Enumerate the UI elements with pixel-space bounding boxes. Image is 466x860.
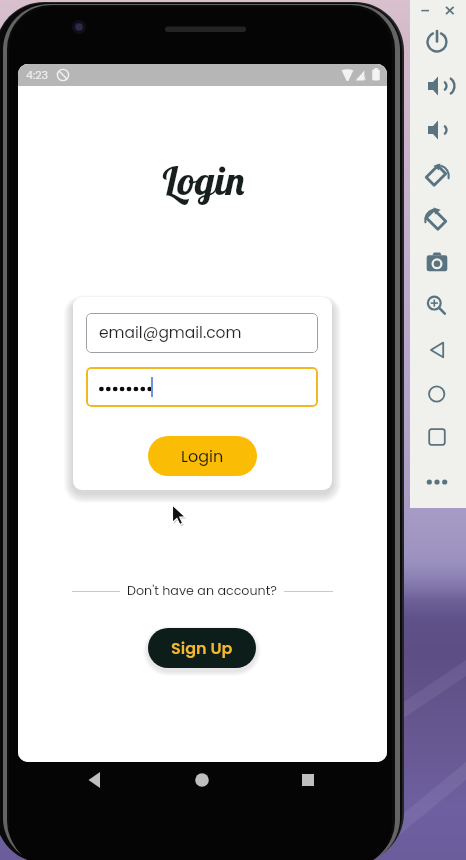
staticText: email@gmail.com — [99, 322, 242, 344]
button[interactable]: Minimize — [410, 0, 466, 30]
button[interactable]: Screenshot — [416, 243, 460, 283]
button[interactable]: Login — [148, 436, 257, 476]
staticText: Sign Up — [171, 637, 233, 659]
button[interactable]: Power — [416, 22, 460, 62]
staticText: Don't have an account? — [127, 582, 277, 600]
button[interactable]: More — [416, 462, 460, 502]
button[interactable] — [86, 367, 318, 407]
button[interactable]: Close — [410, 0, 466, 30]
button[interactable]: Rotate left — [416, 154, 460, 194]
button[interactable]: Zoom — [416, 283, 460, 323]
staticText: Login — [19, 155, 387, 205]
button[interactable]: Recent apps — [288, 762, 328, 802]
staticText: 4:23 — [26, 67, 49, 82]
button[interactable]: Volume down — [416, 110, 460, 150]
button[interactable]: Home — [182, 762, 222, 802]
staticText: Login — [181, 445, 224, 467]
button[interactable]: email@gmail.com — [86, 313, 318, 353]
button[interactable]: Volume up — [416, 66, 460, 106]
button[interactable]: Rotate right — [416, 198, 460, 238]
button[interactable]: Back — [416, 330, 460, 370]
button[interactable]: Home — [416, 374, 460, 414]
button[interactable]: Back — [75, 762, 115, 802]
button[interactable]: Recents — [416, 417, 460, 457]
button[interactable]: Sign Up — [148, 628, 256, 668]
